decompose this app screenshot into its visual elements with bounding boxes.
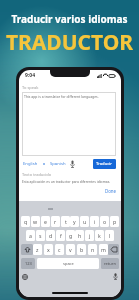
staticText: n [91,246,95,253]
staticText: x [47,246,50,253]
button[interactable]: Swap languages [42,162,46,166]
button[interactable]: i [90,216,99,227]
button[interactable]: Done [105,188,121,194]
staticText: Done [105,188,117,194]
staticText: Traducir varios idiomas [0,12,139,26]
staticText: 9:04 [25,72,35,79]
button[interactable]: Dictate [113,273,118,280]
staticText: English [23,161,38,167]
staticText: d [49,232,53,239]
staticText: This app is a translator for different l… [24,94,99,99]
button[interactable]: Shift [21,244,33,255]
button[interactable]: Speak [70,160,75,168]
button[interactable]: s [36,230,45,241]
button[interactable]: Switch keyboard [22,274,28,280]
button[interactable]: a [26,230,35,241]
staticText: s [39,232,42,239]
button[interactable]: m [99,244,108,255]
staticText: TRADUCTOR [0,28,139,57]
staticText: return [104,261,116,266]
button[interactable]: 123 [21,258,35,269]
button[interactable]: d [46,230,55,241]
staticText: Esta aplicación es un traductor para dif… [22,179,111,184]
button[interactable]: Backspace [108,244,119,255]
staticText: f [60,232,62,239]
button[interactable]: v [66,244,75,255]
staticText: m [101,246,106,253]
staticText: h [78,232,82,239]
button[interactable]: Traducir [93,159,116,169]
button[interactable]: u [80,216,89,227]
button[interactable]: return [101,258,119,269]
staticText: t [65,218,67,225]
staticText: v [69,246,72,253]
staticText: 123 [25,261,32,266]
button[interactable]: Spanish [49,161,67,167]
button[interactable]: x [44,244,53,255]
staticText: e [44,218,47,225]
staticText: Traducir [96,161,113,167]
button[interactable]: j [85,230,94,241]
staticText: p [113,218,117,225]
button[interactable]: space [37,258,99,269]
staticText: j [89,232,91,239]
button[interactable]: e [41,216,50,227]
button[interactable]: English [22,161,39,167]
button[interactable]: h [75,230,84,241]
staticText: l [109,232,111,239]
staticText: o [103,218,107,225]
staticText: g [69,232,73,239]
button[interactable]: n [88,244,97,255]
button[interactable]: t [61,216,70,227]
staticText: space [63,261,74,266]
staticText: Texto traducido [22,172,52,177]
staticText: c [58,246,61,253]
button[interactable]: l [105,230,114,241]
staticText: i [94,218,96,225]
button[interactable]: f [56,230,65,241]
button[interactable]: y [70,216,79,227]
button[interactable]: c [55,244,64,255]
button[interactable]: p [110,216,119,227]
button[interactable]: o [100,216,109,227]
staticText: To speak [22,85,39,90]
button[interactable]: k [95,230,104,241]
staticText: r [54,218,57,225]
staticText: k [98,232,101,239]
staticText: w [33,218,38,225]
button[interactable]: r [51,216,60,227]
button[interactable]: q [21,216,30,227]
button[interactable]: w [31,216,40,227]
button[interactable]: b [77,244,86,255]
staticText: y [73,218,76,225]
staticText: a [29,232,32,239]
button[interactable]: g [66,230,75,241]
staticText: Spanish [50,161,66,167]
staticText: q [24,218,28,225]
staticText: u [83,218,87,225]
button[interactable]: z [33,244,42,255]
staticText: z [36,246,39,253]
staticText: b [80,246,84,253]
